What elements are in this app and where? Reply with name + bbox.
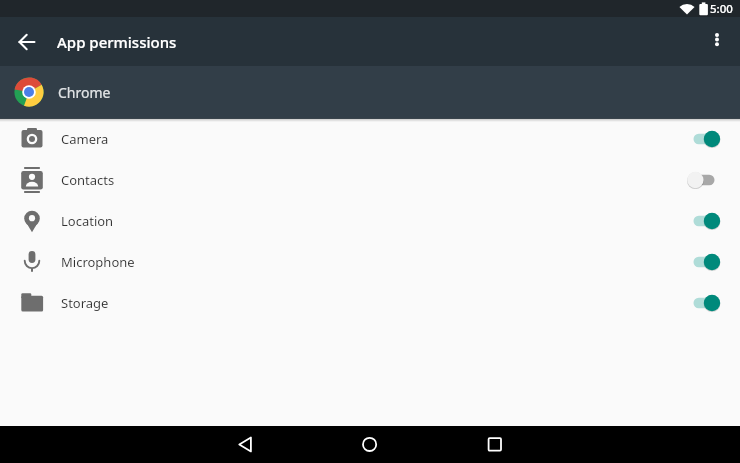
button[interactable]: Location <box>0 200 740 241</box>
button[interactable] <box>213 426 277 463</box>
button[interactable]: Contacts <box>0 159 740 200</box>
staticText: 5:00 <box>710 1 733 17</box>
button[interactable]: Microphone <box>0 241 740 282</box>
staticText: Location <box>61 212 114 230</box>
staticText: App permissions <box>57 32 177 52</box>
button[interactable] <box>0 17 54 66</box>
staticText: Storage <box>61 294 109 312</box>
button[interactable]: Storage <box>0 282 740 323</box>
button[interactable] <box>693 17 740 66</box>
staticText: Camera <box>61 130 109 148</box>
button[interactable] <box>688 211 722 231</box>
button[interactable] <box>463 426 527 463</box>
button[interactable]: Camera <box>0 118 740 159</box>
button[interactable] <box>688 129 722 149</box>
button[interactable] <box>338 426 402 463</box>
staticText: Contacts <box>61 171 115 189</box>
button[interactable]: Chrome <box>0 66 740 118</box>
button[interactable] <box>688 252 722 272</box>
staticText: Chrome <box>58 83 111 102</box>
staticText: Microphone <box>61 253 135 271</box>
button[interactable] <box>688 293 722 313</box>
button[interactable] <box>688 170 722 190</box>
